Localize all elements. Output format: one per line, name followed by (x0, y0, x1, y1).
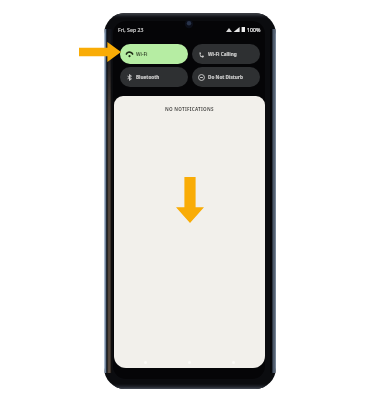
staticText: NO NOTIFICATIONS (165, 106, 214, 112)
staticText: Wi-Fi Calling (208, 51, 237, 57)
staticText: Wi-Fi (136, 51, 148, 57)
staticText: Fri, Sep 23 (118, 26, 144, 33)
staticText: 100% (247, 26, 261, 33)
button[interactable]: Wi-Fi (120, 44, 188, 64)
staticText: Bluetooth (136, 74, 160, 80)
button[interactable]: Do Not Disturb (192, 67, 260, 87)
button[interactable]: Bluetooth (120, 67, 188, 87)
button[interactable]: Wi-Fi Calling (192, 44, 260, 64)
other: Front camera (183, 18, 195, 30)
staticText: Do Not Disturb (208, 74, 243, 80)
